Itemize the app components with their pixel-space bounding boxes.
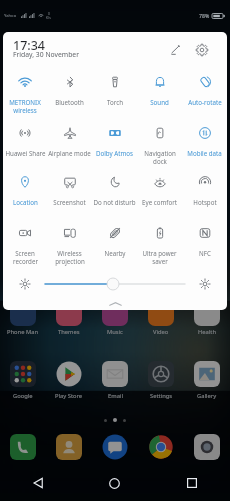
staticText: Settings [150,392,173,400]
button[interactable] [184,433,230,461]
staticText: Yahoo [4,13,17,19]
button[interactable]: Phone Man [0,300,46,336]
button[interactable]: Gallery [184,361,230,403]
button[interactable]: Airplane mode [47,116,92,168]
button[interactable]: Themes [46,300,92,336]
staticText: Play Store [55,392,83,400]
button[interactable]: Huawei Share [3,116,47,168]
button[interactable]: Settings [192,40,212,60]
button[interactable]: Recents [153,465,230,501]
button[interactable]: NFC [182,216,227,268]
staticText: Eye comfort [142,198,177,206]
staticText: wireless [13,106,37,114]
button[interactable]: Bluetooth [47,65,92,117]
button[interactable]: Nearby [92,216,137,268]
staticText: Friday, 30 November [13,50,80,59]
staticText: Ultra power [142,249,177,257]
button[interactable]: Location [3,165,47,217]
staticText: NFC [199,249,211,257]
button[interactable] [92,433,138,461]
staticText: 78% [199,12,210,19]
button[interactable]: Navigation [137,116,182,168]
staticText: Dolby Atmos [96,149,133,157]
button[interactable]: Eye comfort [137,165,182,217]
staticText: Google [13,392,33,400]
staticText: Gallery [197,392,217,400]
staticText: Auto-rotate [188,98,222,106]
button[interactable] [46,433,92,461]
staticText: Location [13,198,38,206]
staticText: Video [153,328,169,336]
staticText: projection [55,257,85,265]
staticText: Mobile data [187,149,222,157]
button[interactable]: Auto-rotate [182,65,227,117]
button[interactable]: Do not disturb [92,165,137,217]
staticText: Sound [150,98,169,106]
staticText: Email [108,392,123,400]
staticText: Phone Man [7,328,39,336]
staticText: Screenshot [53,198,86,206]
staticText: Hotspot [193,198,217,206]
button[interactable]: Dolby Atmos [92,116,137,168]
button[interactable]: Back [0,465,76,501]
button[interactable]: Screenshot [47,165,92,217]
staticText: Huawei Share [5,149,46,157]
staticText: recorder [13,257,38,265]
staticText: Screen [15,249,35,257]
staticText: 0 [48,12,50,16]
staticText: 17:34 [13,37,46,54]
button[interactable]: Settings [138,361,184,403]
staticText: METRONIX [9,98,41,106]
button[interactable]: Play Store [46,361,92,403]
staticText: Do not disturb [93,198,136,206]
staticText: Navigation [144,149,176,157]
button[interactable]: Screen [3,216,47,268]
staticText: Airplane mode [48,149,91,157]
staticText: K/s [46,16,51,20]
staticText: Themes [58,328,80,336]
button[interactable] [138,433,184,461]
button[interactable]: Email [92,361,138,403]
button[interactable]: Music [92,300,138,336]
button[interactable]: Home [76,465,153,501]
staticText: Nearby [104,249,126,257]
button[interactable]: Health [184,300,230,336]
button[interactable]: Google [0,361,46,403]
button[interactable]: Mobile data [182,116,227,168]
staticText: saver [152,257,168,265]
staticText: Torch [107,98,123,106]
button[interactable]: Wireless [47,216,92,268]
staticText: Wireless [57,249,82,257]
staticText: Health [198,328,216,336]
button[interactable]: Ultra power [137,216,182,268]
button[interactable]: Torch [92,65,137,117]
staticText: dock [153,157,167,165]
button[interactable]: Video [138,300,184,336]
button[interactable]: Edit [165,40,185,60]
staticText: Music [107,328,123,336]
button[interactable]: METRONIX [3,65,47,117]
button[interactable] [0,433,46,461]
button[interactable]: Sound [137,65,182,117]
button[interactable]: Hotspot [182,165,227,217]
staticText: Bluetooth [55,98,84,106]
